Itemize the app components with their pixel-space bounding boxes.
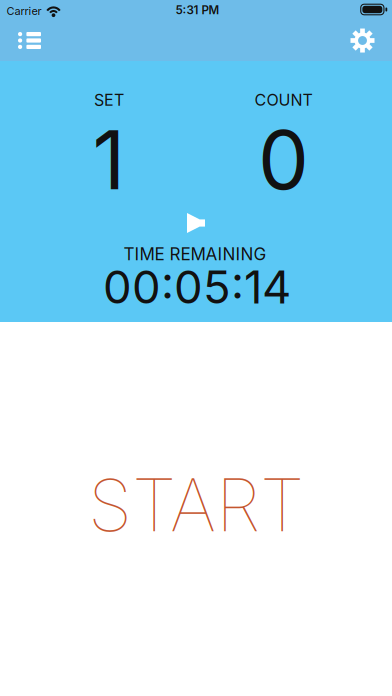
staticText: 00:05:14 [103, 260, 291, 314]
staticText: SET [94, 90, 124, 110]
button[interactable]: Settings [341, 20, 384, 61]
staticText: 0 [258, 111, 309, 209]
staticText: 1 [92, 111, 125, 209]
staticText: COUNT [254, 90, 312, 110]
staticText: 5:31 PM [175, 3, 219, 17]
button[interactable]: Workout list [6, 20, 53, 61]
staticText: Carrier [6, 4, 41, 18]
button[interactable]: START [46, 445, 346, 565]
staticText: TIME REMAINING [123, 244, 266, 264]
staticText: START [88, 461, 304, 548]
